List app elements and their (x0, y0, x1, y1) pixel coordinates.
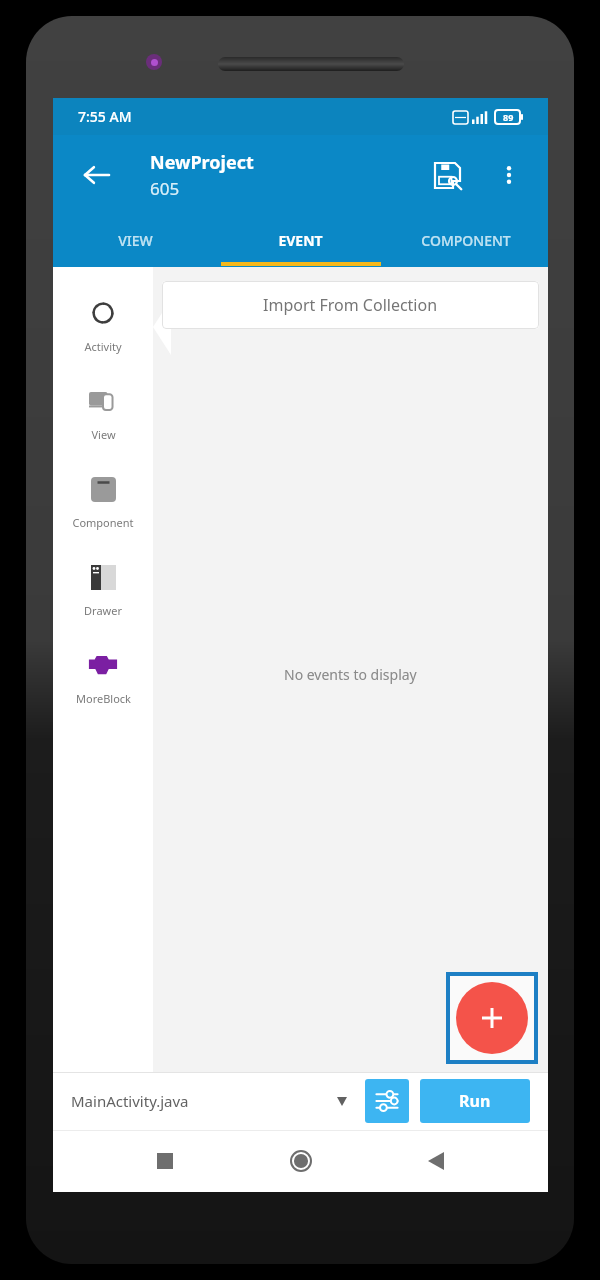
staticText: Drawer (84, 603, 122, 618)
button[interactable]: Recents (141, 1137, 189, 1185)
staticText: View (91, 427, 116, 442)
button[interactable]: Back (75, 153, 119, 197)
button[interactable]: Add event (446, 972, 538, 1064)
staticText: MainActivity.java (71, 1091, 189, 1111)
button[interactable]: Component (53, 459, 153, 547)
button[interactable]: Activity (53, 283, 153, 371)
staticText: No events to display (284, 665, 417, 684)
staticText: Import From Collection (263, 294, 438, 316)
staticText: 7:55 AM (78, 107, 132, 126)
staticText: EVENT (278, 231, 323, 250)
button[interactable]: Import From Collection (162, 281, 539, 329)
button[interactable]: Run (420, 1079, 530, 1123)
staticText: COMPONENT (421, 231, 511, 250)
button[interactable]: Drawer (53, 547, 153, 635)
staticText: VIEW (118, 231, 153, 250)
staticText: Run (459, 1090, 491, 1112)
staticText: 89 (503, 111, 514, 123)
button[interactable]: MainActivity.java (71, 1072, 351, 1130)
button[interactable]: View (53, 371, 153, 459)
button[interactable]: Save (424, 152, 470, 198)
staticText: MoreBlock (76, 691, 131, 706)
button[interactable]: MoreBlock (53, 635, 153, 723)
staticText: Activity (84, 339, 122, 354)
button[interactable]: EVENT (218, 214, 383, 267)
button[interactable]: Settings (365, 1079, 409, 1123)
button[interactable]: COMPONENT (383, 214, 548, 267)
staticText: NewProject (150, 150, 254, 175)
button[interactable]: More options (488, 154, 530, 196)
button[interactable]: VIEW (53, 214, 218, 267)
button[interactable]: Back (412, 1137, 460, 1185)
button[interactable]: Home (277, 1137, 325, 1185)
staticText: Component (72, 515, 134, 530)
staticText: 605 (150, 177, 180, 200)
